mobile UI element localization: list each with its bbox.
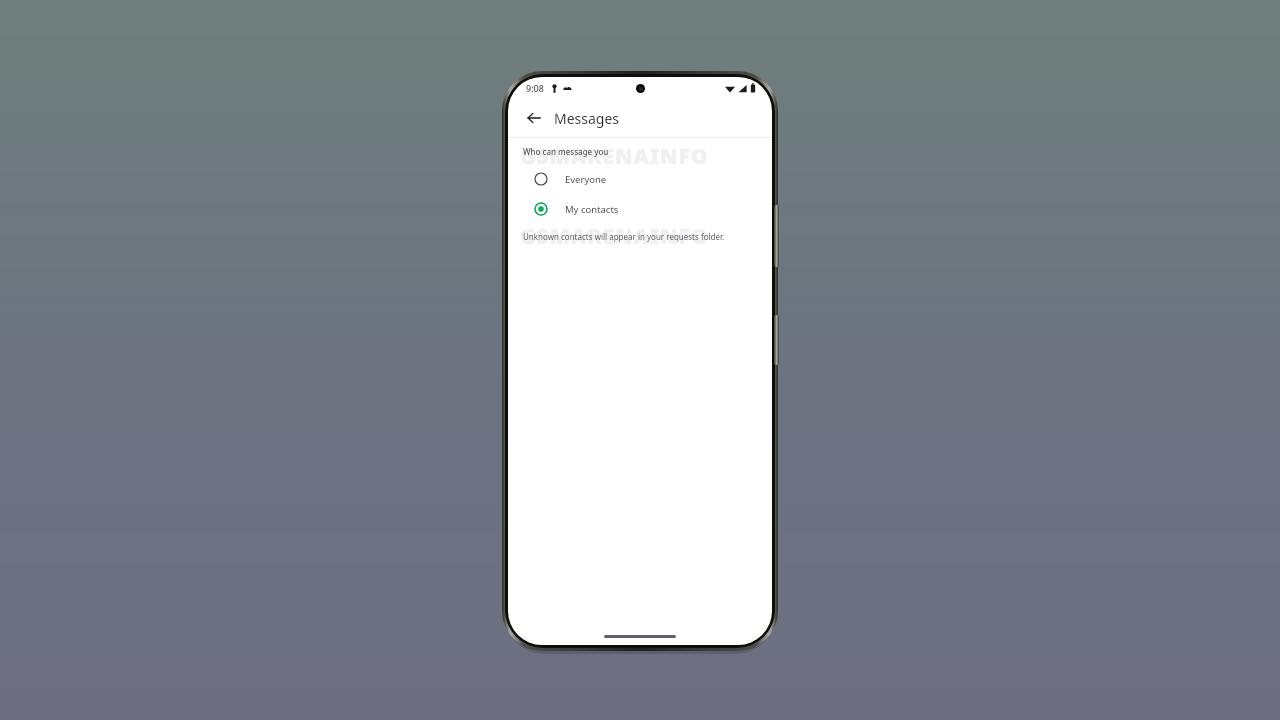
staticText: Messages (554, 109, 620, 128)
button[interactable]: Everyone (508, 164, 772, 194)
staticText: GSMARENAINFO (520, 222, 709, 251)
staticText: 9:08 (526, 82, 544, 94)
button[interactable]: Back (520, 104, 548, 132)
staticText: My contacts (565, 203, 619, 216)
staticText: Unknown contacts will appear in your req… (523, 231, 725, 242)
button[interactable]: My contacts (508, 194, 772, 224)
staticText: Everyone (565, 173, 607, 186)
staticText: Who can message you (523, 146, 609, 157)
staticText: GSMARENAINFO (520, 142, 709, 171)
